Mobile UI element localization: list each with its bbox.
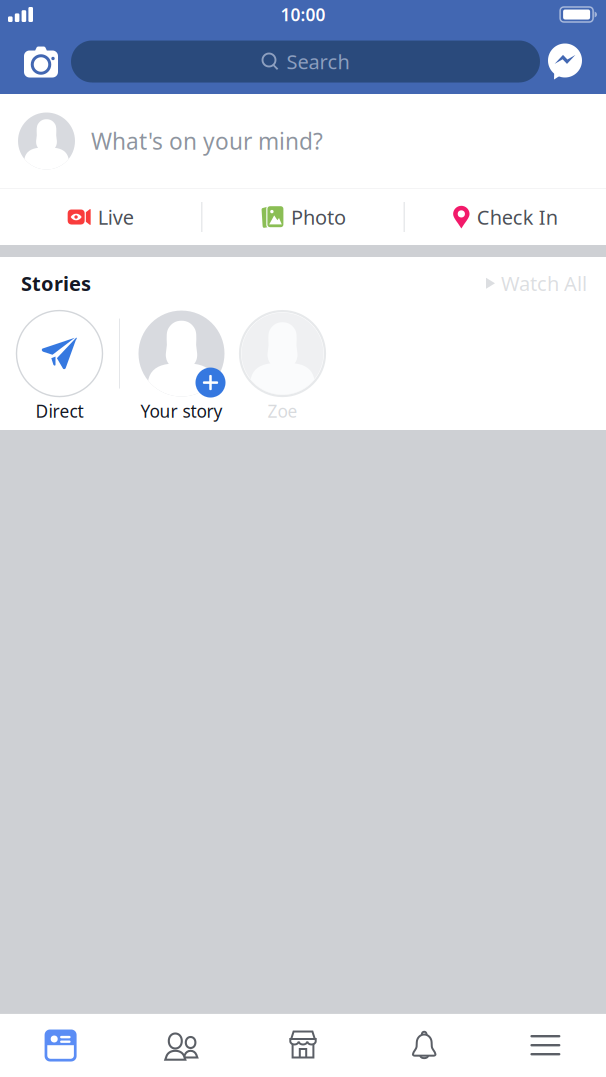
button[interactable]: Check In: [405, 189, 606, 245]
button[interactable]: Zoe: [232, 311, 333, 423]
button[interactable]: What's on your mind?: [0, 94, 606, 188]
button[interactable]: News Feed: [0, 1014, 121, 1077]
staticText: Live: [98, 204, 134, 230]
staticText: Your story: [140, 400, 222, 423]
staticText: Check In: [477, 204, 558, 230]
button[interactable]: Search: [71, 40, 540, 82]
button[interactable]: Camera: [0, 39, 71, 83]
staticText: Search: [286, 48, 349, 75]
staticText: Watch All: [501, 270, 587, 297]
staticText: Zoe: [267, 400, 297, 423]
button[interactable]: Marketplace: [242, 1014, 364, 1077]
button[interactable]: Live: [0, 189, 201, 245]
button[interactable]: Friend Requests: [121, 1014, 242, 1077]
button[interactable]: Notifications: [364, 1014, 485, 1077]
staticText: What's on your mind?: [91, 126, 323, 156]
button[interactable]: Messenger: [540, 38, 606, 84]
staticText: Direct: [35, 400, 83, 423]
button[interactable]: Menu: [485, 1014, 606, 1077]
button[interactable]: Your story: [131, 311, 232, 423]
button[interactable]: Direct: [0, 311, 119, 423]
staticText: Photo: [291, 204, 346, 230]
button[interactable]: Photo: [202, 189, 404, 245]
staticText: 10:00: [280, 3, 325, 26]
button[interactable]: Watch All: [486, 270, 587, 297]
staticText: Stories: [21, 270, 91, 297]
